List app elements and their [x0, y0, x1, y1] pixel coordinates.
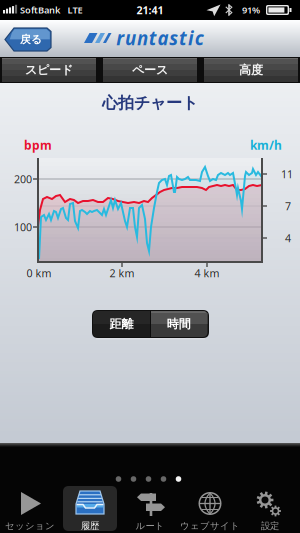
staticText: 距離 [109, 317, 133, 331]
button[interactable]: ルート [120, 486, 180, 533]
staticText: bpm [24, 137, 52, 153]
staticText: 時間 [167, 317, 191, 331]
staticText: km/h [250, 137, 282, 153]
staticText: 11 [281, 167, 293, 181]
button[interactable]: 高度 [204, 58, 298, 82]
staticText: runtastic [116, 26, 204, 50]
staticText: スピード [25, 63, 73, 77]
staticText: 2 km [109, 266, 134, 280]
staticText: ルート [135, 520, 164, 531]
button[interactable]: セッション [0, 486, 60, 533]
staticText: 7 [285, 199, 291, 213]
button[interactable]: ウェブサイト [180, 486, 240, 533]
staticText: 履歴 [81, 520, 99, 531]
staticText: ペース [132, 63, 168, 77]
button[interactable]: 距離 [92, 310, 150, 337]
staticText: 91% [242, 4, 260, 16]
staticText: ウェブサイト [180, 520, 240, 531]
staticText: セッション [5, 520, 55, 531]
staticText: 高度 [239, 63, 263, 77]
button[interactable]: スピード [2, 58, 96, 82]
button[interactable]: ペース [103, 58, 197, 82]
staticText: 戻る [20, 33, 42, 46]
button[interactable]: 履歴 [60, 486, 120, 533]
staticText: 4 km [194, 266, 219, 280]
staticText: 設定 [261, 520, 279, 531]
staticText: 0 km [26, 266, 51, 280]
button[interactable]: 時間 [150, 310, 208, 337]
button[interactable]: 戻る [4, 27, 52, 52]
staticText: SoftBank [20, 4, 60, 16]
button[interactable]: 設定 [240, 486, 300, 533]
staticText: 100 [14, 220, 32, 234]
staticText: 心拍チャート [102, 93, 198, 113]
staticText: 4 [285, 231, 291, 245]
staticText: 200 [14, 172, 32, 186]
staticText: LTE [67, 4, 82, 16]
staticText: 21:41 [136, 3, 163, 17]
